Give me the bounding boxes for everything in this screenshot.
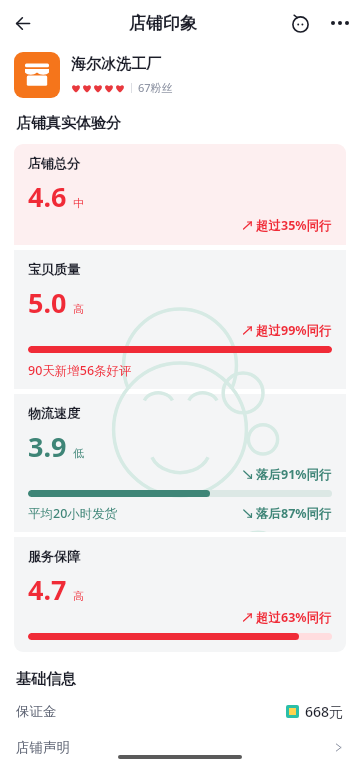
button[interactable]: 服务保障 [14, 537, 346, 652]
staticText: 4.6 [28, 178, 67, 215]
staticText: 物流速度 [28, 405, 80, 421]
button[interactable]: 店铺总分 [14, 144, 346, 245]
staticText: 保证金 [16, 703, 57, 720]
staticText: 超过63%同行 [256, 609, 332, 626]
staticText: 90天新增56条好评 [28, 362, 132, 379]
staticText: 3.9 [28, 428, 67, 465]
staticText: 低 [73, 446, 84, 460]
button[interactable]: 宝贝质量 [14, 250, 346, 389]
button[interactable]: More options [320, 3, 360, 43]
staticText: 落后87%同行 [256, 505, 332, 522]
button[interactable]: Back [0, 0, 46, 46]
staticText: 超过99%同行 [256, 322, 332, 339]
button[interactable]: 海尔冰洗工厂 [0, 46, 360, 104]
staticText: 668元 [305, 702, 344, 721]
staticText: 高 [73, 589, 84, 603]
button[interactable]: 物流速度 [14, 394, 346, 532]
staticText: 5.0 [28, 284, 67, 321]
staticText: 店铺印象 [129, 13, 197, 34]
staticText: 基础信息 [16, 670, 76, 689]
staticText: 店铺声明 [16, 739, 70, 756]
button[interactable]: Customer service [280, 3, 320, 43]
staticText: 平均20小时发货 [28, 505, 118, 522]
staticText: 海尔冰洗工厂 [71, 55, 161, 74]
staticText: 落后91%同行 [256, 466, 332, 483]
staticText: 超过35%同行 [256, 217, 332, 234]
button[interactable]: 保证金 [0, 695, 360, 727]
button[interactable]: 店铺声明 [0, 731, 360, 763]
staticText: 中 [73, 196, 84, 210]
staticText: 高 [73, 302, 84, 316]
staticText: 服务保障 [28, 548, 80, 564]
staticText: 4.7 [28, 571, 67, 608]
staticText: 67粉丝 [138, 80, 173, 95]
staticText: 店铺总分 [28, 155, 80, 171]
staticText: 宝贝质量 [28, 261, 80, 277]
staticText: 店铺真实体验分 [16, 114, 121, 133]
